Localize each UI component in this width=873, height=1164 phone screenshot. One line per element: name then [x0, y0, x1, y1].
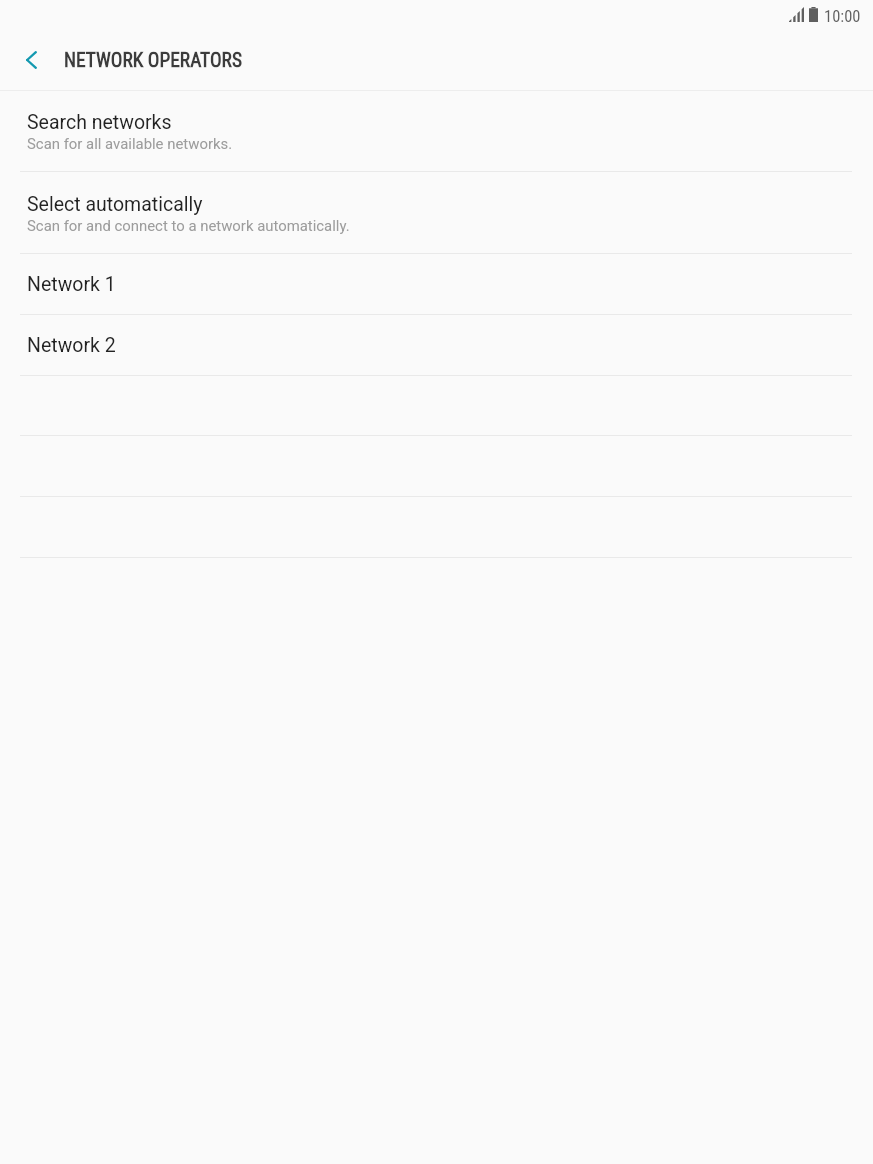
button[interactable]: Search networks [0, 91, 873, 171]
button[interactable]: Select automatically [0, 172, 873, 253]
staticText: Select automatically [27, 193, 203, 216]
staticText: Network 2 [27, 334, 116, 357]
staticText: Network 1 [27, 273, 116, 296]
staticText: NETWORK OPERATORS [64, 49, 242, 72]
staticText: 10:00 [824, 7, 861, 26]
staticText: Scan for all available networks. [27, 135, 233, 152]
button[interactable]: Navigate up [0, 30, 64, 90]
button[interactable]: Network 1 [0, 254, 873, 314]
staticText: Search networks [27, 111, 172, 134]
button[interactable]: Network 2 [0, 315, 873, 375]
staticText: Scan for and connect to a network automa… [27, 217, 350, 234]
